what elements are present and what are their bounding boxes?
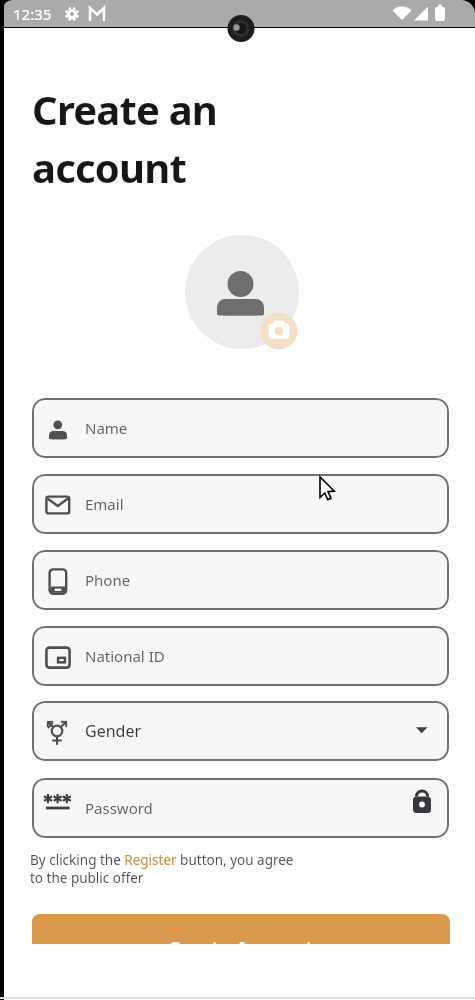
staticText: Phone xyxy=(85,570,131,590)
staticText: Gender xyxy=(85,720,142,742)
staticText: 12:35 xyxy=(13,4,52,24)
button[interactable]: National ID xyxy=(32,626,449,686)
button[interactable]: Name xyxy=(32,398,449,458)
staticText: Create Account xyxy=(168,936,314,944)
button[interactable]: Gender xyxy=(32,701,449,761)
button[interactable]: Password xyxy=(32,778,449,838)
staticText: Create an account xyxy=(32,82,217,195)
button[interactable]: Email xyxy=(32,474,449,534)
button[interactable]: Create Account xyxy=(32,914,450,944)
staticText: National ID xyxy=(85,646,165,666)
button[interactable] xyxy=(185,235,299,349)
staticText: Name xyxy=(85,418,128,438)
staticText: Password xyxy=(85,798,153,818)
staticText: Email xyxy=(85,494,124,514)
button[interactable]: Phone xyxy=(32,550,449,610)
staticText: By clicking the Register button, you agr… xyxy=(30,851,294,887)
